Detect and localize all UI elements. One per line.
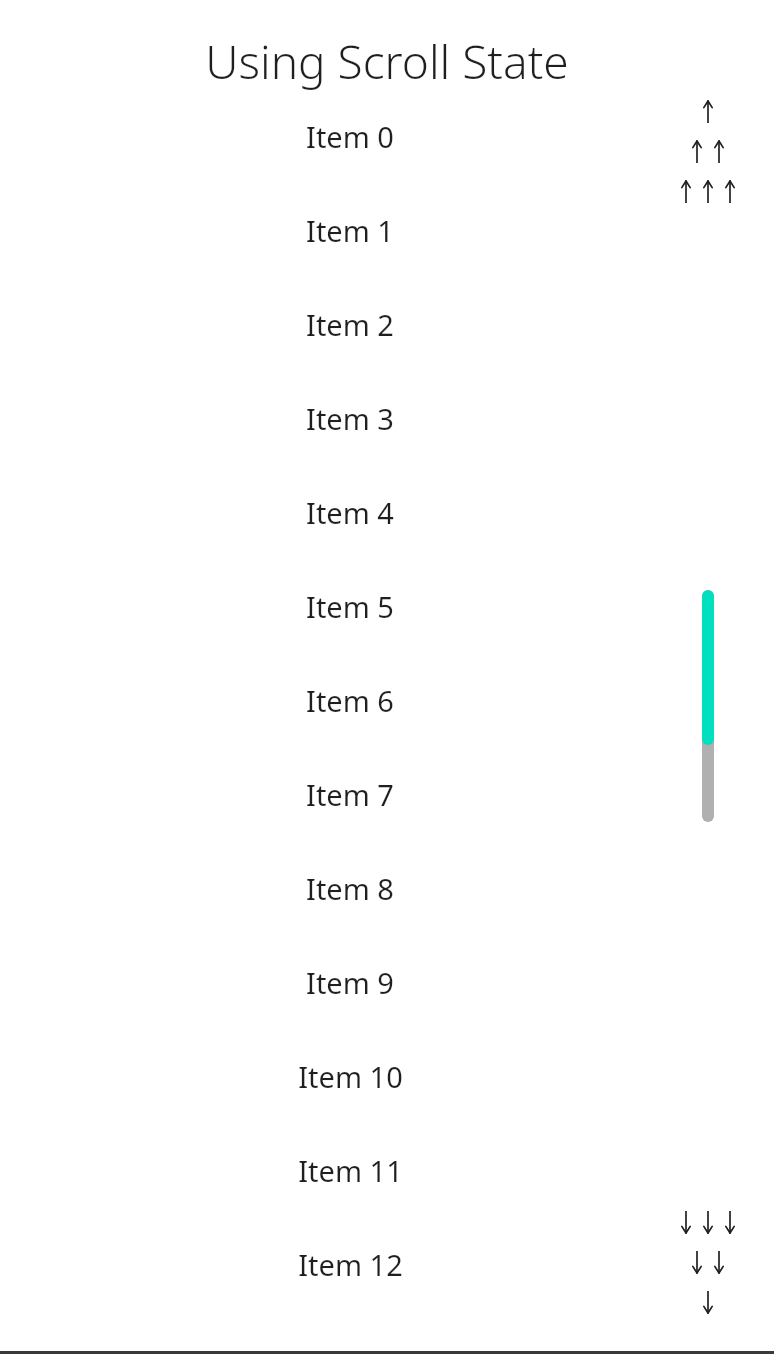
button[interactable]: Item 9 xyxy=(306,963,394,1057)
other: Scroll up indicator xyxy=(671,101,745,203)
staticText: Item 7 xyxy=(306,775,394,814)
staticText: Item 3 xyxy=(306,399,394,438)
button[interactable]: Item 2 xyxy=(306,305,394,399)
button[interactable]: Item 0 xyxy=(306,117,394,211)
button[interactable]: Item 11 xyxy=(298,1151,403,1245)
staticText: Item 0 xyxy=(306,117,394,156)
staticText: Item 2 xyxy=(306,305,394,344)
button[interactable]: Item 12 xyxy=(298,1245,403,1339)
staticText: Item 4 xyxy=(306,493,394,532)
staticText: Item 5 xyxy=(306,587,394,626)
staticText: Using Scroll State xyxy=(205,30,569,93)
button[interactable]: Item 4 xyxy=(306,493,394,587)
button[interactable]: Item 10 xyxy=(298,1057,403,1151)
staticText: Item 9 xyxy=(306,963,394,1002)
button[interactable]: Item 1 xyxy=(306,211,394,305)
staticText: Item 6 xyxy=(306,681,394,720)
button[interactable]: Item 8 xyxy=(306,869,394,963)
button[interactable]: Item 6 xyxy=(306,681,394,775)
button[interactable]: Item 7 xyxy=(306,775,394,869)
staticText: Item 12 xyxy=(298,1245,403,1284)
other: Scroll down indicator xyxy=(671,1211,745,1313)
staticText: Item 1 xyxy=(306,211,394,250)
button[interactable]: Item 3 xyxy=(306,399,394,493)
staticText: Item 8 xyxy=(306,869,394,908)
staticText: Item 10 xyxy=(298,1057,403,1096)
staticText: Item 11 xyxy=(298,1151,403,1190)
button[interactable]: Item 5 xyxy=(306,587,394,681)
